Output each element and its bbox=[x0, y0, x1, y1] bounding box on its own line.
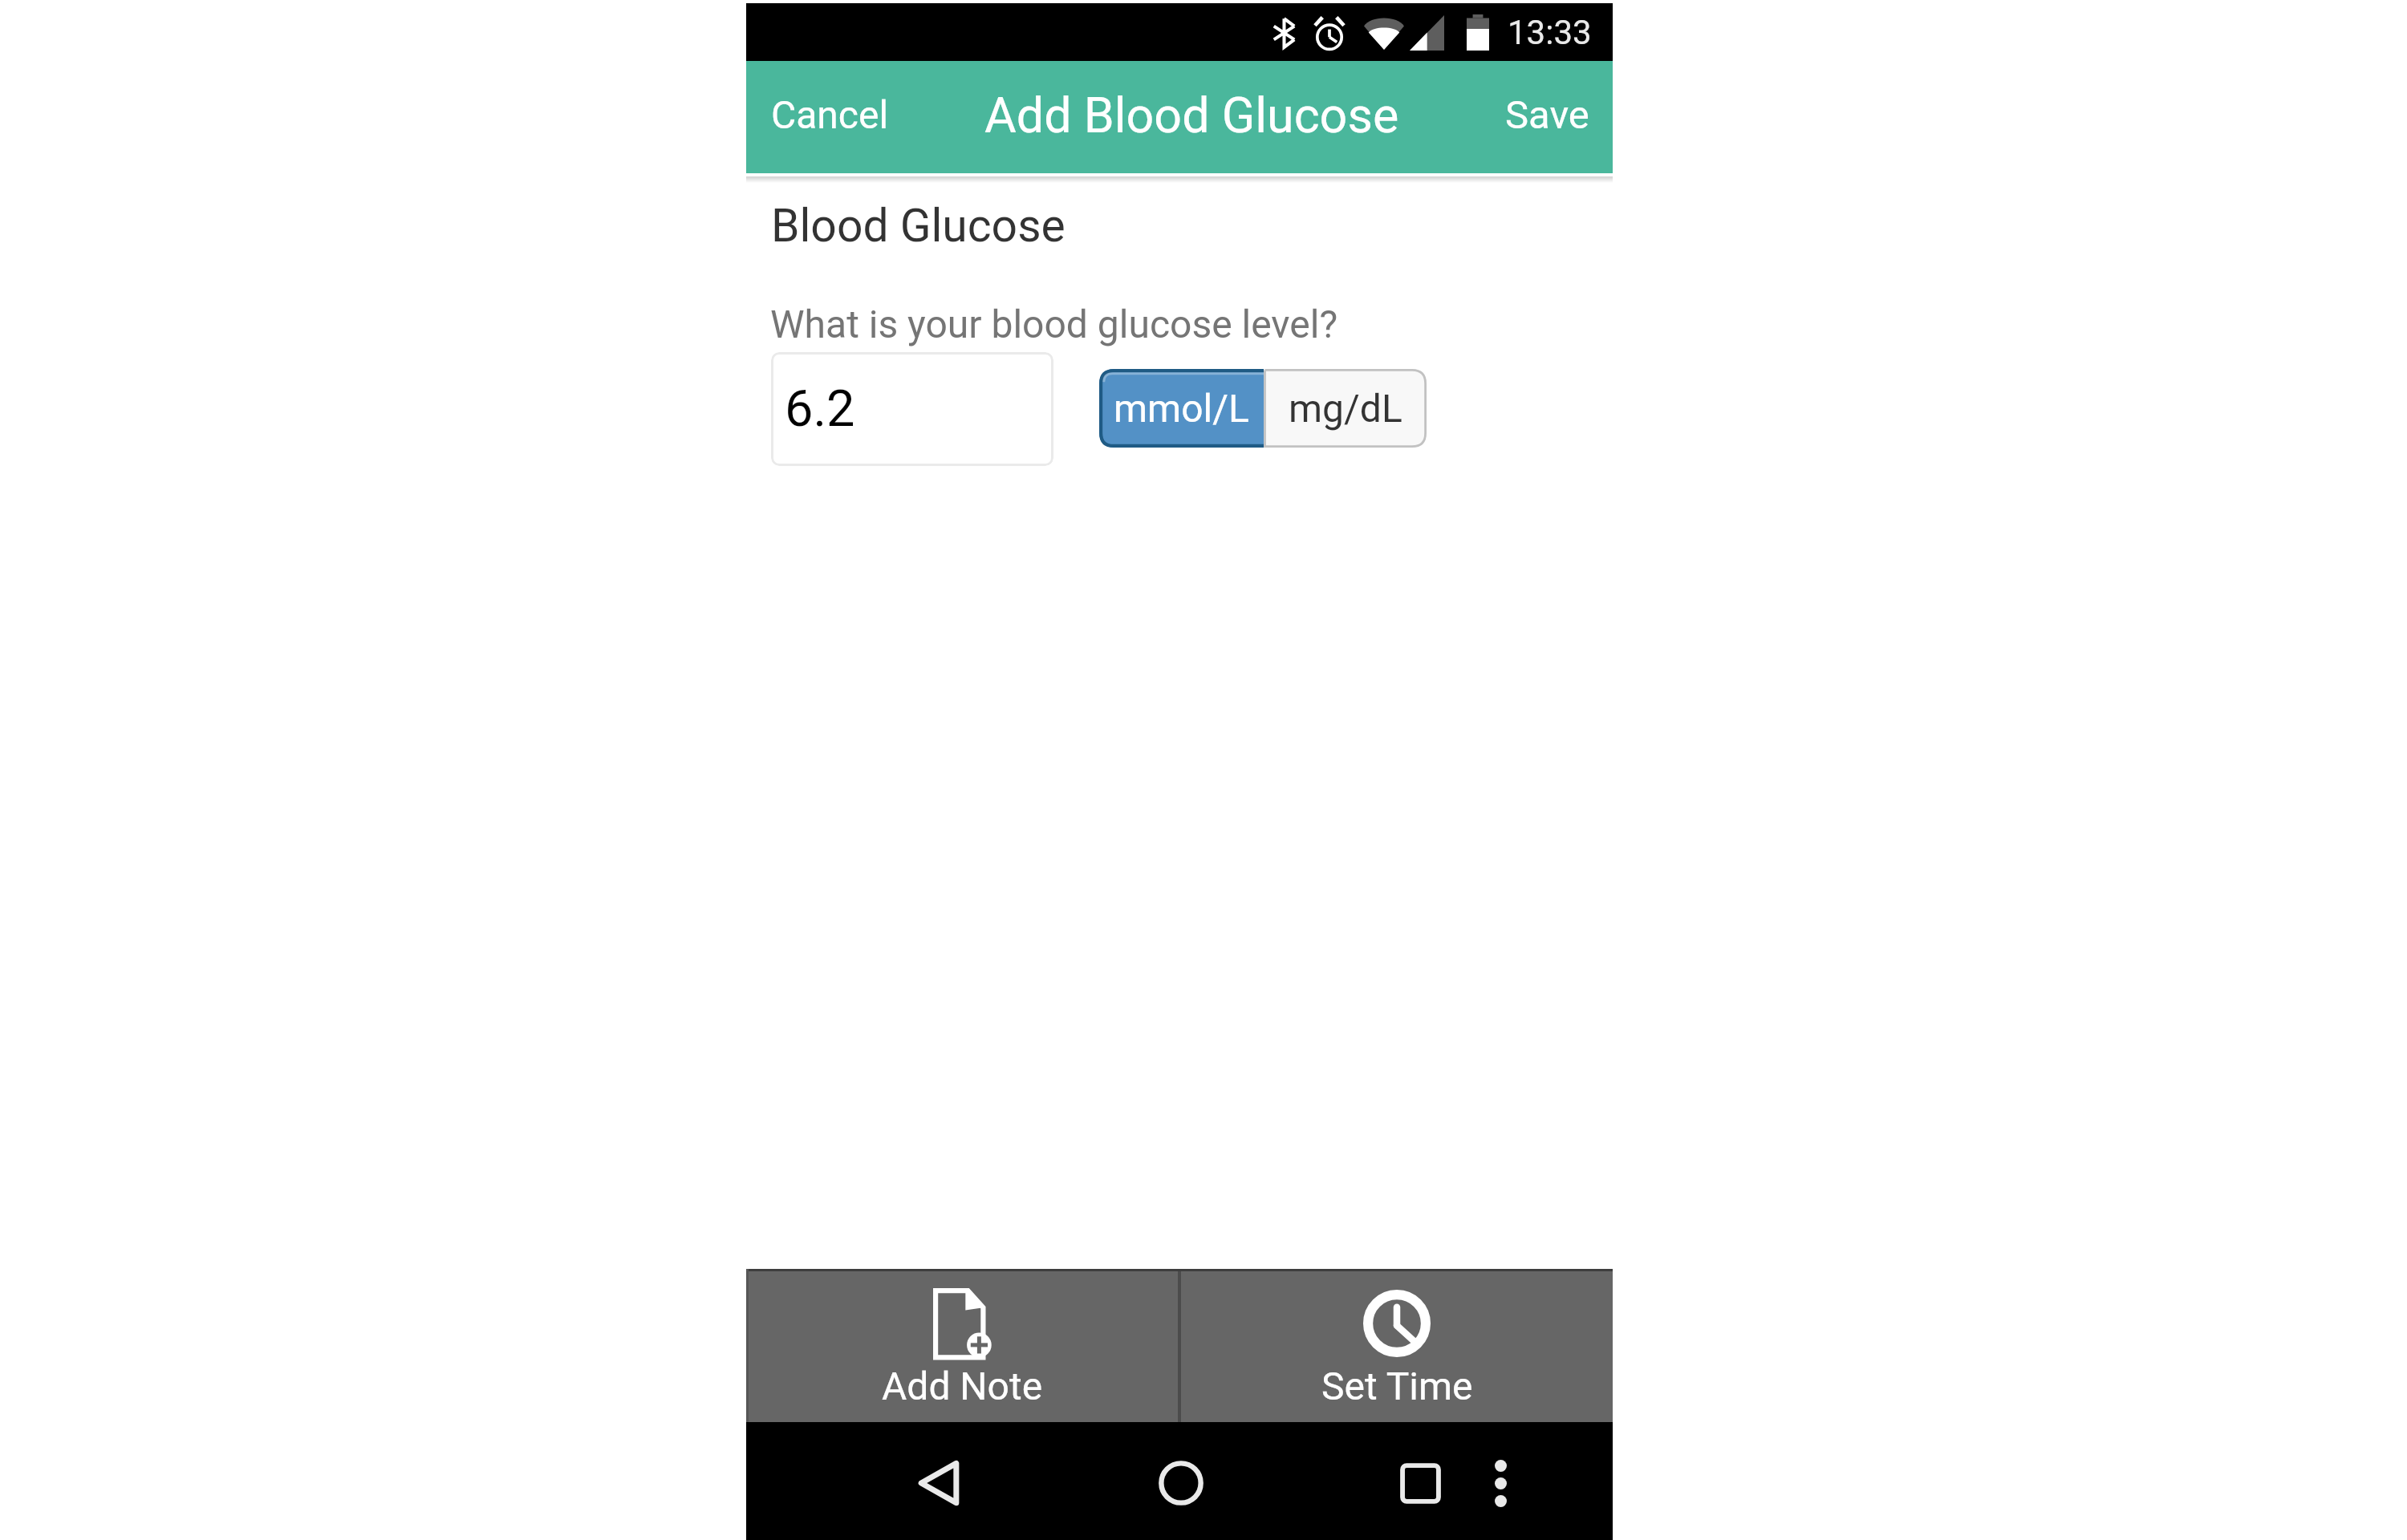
button[interactable]: 6.2 bbox=[771, 352, 1053, 466]
staticText: Blood Glucose bbox=[771, 199, 1065, 253]
button[interactable]: More options bbox=[1464, 1447, 1536, 1519]
button[interactable]: Save bbox=[1428, 61, 1613, 173]
staticText: Set Time bbox=[1321, 1364, 1473, 1408]
staticText: Add Note bbox=[882, 1364, 1043, 1408]
staticText: mg/dL bbox=[1289, 386, 1402, 431]
button[interactable]: Cancel bbox=[746, 61, 987, 173]
staticText: Add Blood Glucose bbox=[984, 87, 1399, 144]
button[interactable]: Add Note bbox=[746, 1269, 1178, 1422]
button[interactable]: Set Time bbox=[1181, 1269, 1613, 1422]
staticText: 13:33 bbox=[1508, 13, 1592, 52]
button[interactable]: Recent apps bbox=[1380, 1443, 1460, 1523]
staticText: 6.2 bbox=[785, 379, 855, 439]
button[interactable]: mmol/L bbox=[1099, 369, 1264, 448]
staticText: Save bbox=[1505, 92, 1589, 138]
button[interactable]: Home bbox=[1141, 1443, 1221, 1523]
staticText: mmol/L bbox=[1114, 386, 1249, 431]
staticText: Cancel bbox=[771, 92, 889, 137]
button[interactable]: mg/dL bbox=[1264, 369, 1427, 448]
staticText: What is your blood glucose level? bbox=[770, 302, 1338, 346]
button[interactable]: Back bbox=[899, 1443, 979, 1523]
